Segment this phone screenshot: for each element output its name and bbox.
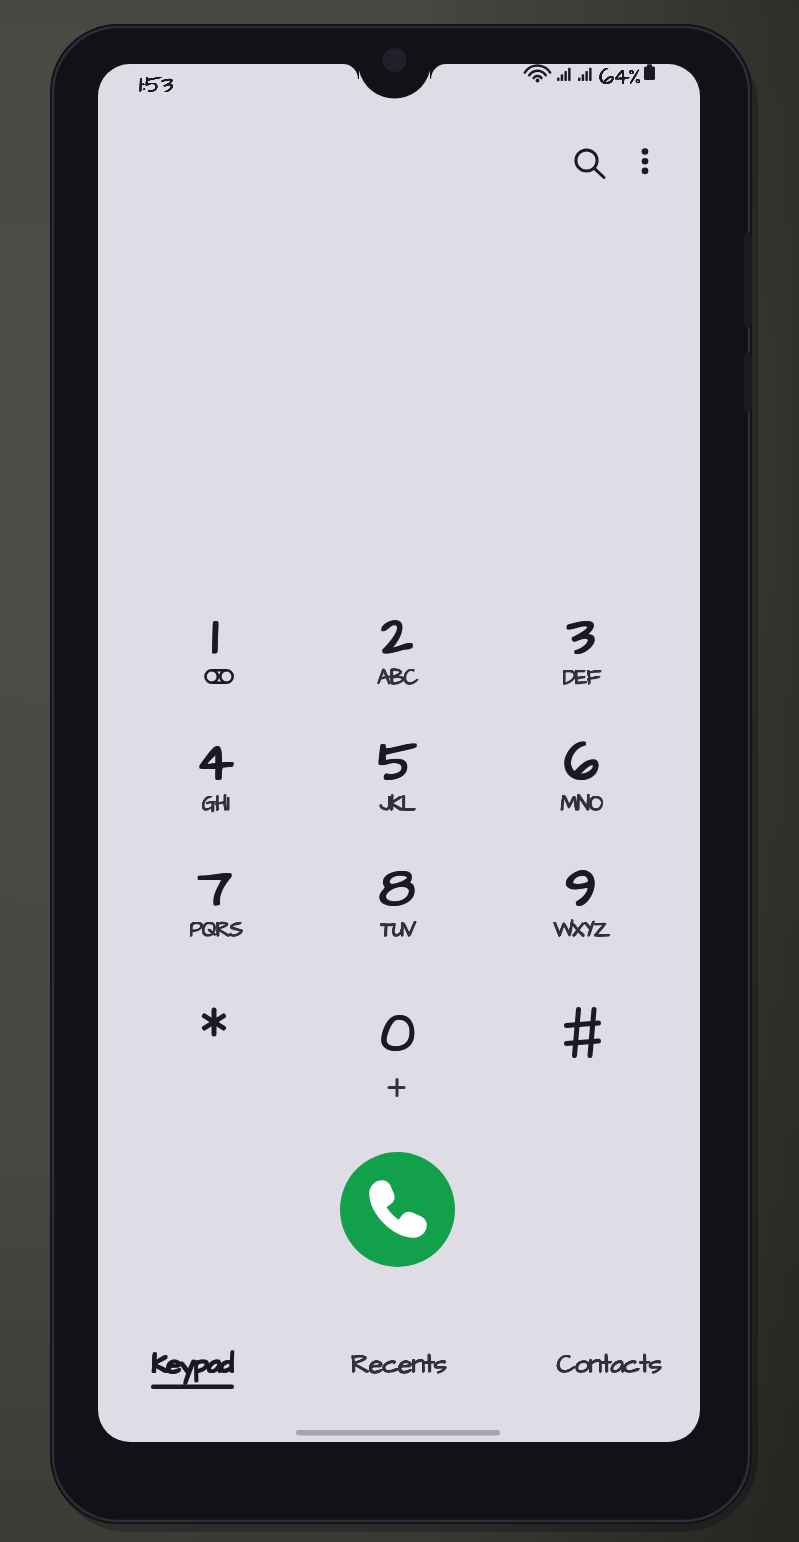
staticText: Keypad xyxy=(151,1344,233,1382)
staticText: Contacts xyxy=(556,1346,661,1384)
staticText: MNO xyxy=(560,789,602,818)
staticText: Keypad xyxy=(150,1346,232,1384)
staticText: Contacts xyxy=(556,1345,661,1383)
staticText: 4 xyxy=(195,724,233,800)
staticText: 0 xyxy=(381,995,416,1071)
staticText: Recents xyxy=(350,1345,446,1383)
staticText: MNO xyxy=(560,789,602,818)
button[interactable]: Search xyxy=(554,128,620,194)
staticText: 9 xyxy=(564,851,596,927)
staticText: 8 xyxy=(380,852,416,928)
staticText: 1:53 xyxy=(139,68,173,101)
button[interactable]: 6 xyxy=(497,712,665,832)
button[interactable]: 3 xyxy=(497,586,665,706)
staticText: PQRS xyxy=(189,915,242,944)
staticText: 1:53 xyxy=(139,68,173,101)
staticText: WXYZ xyxy=(553,916,609,945)
staticText: TUV xyxy=(380,915,415,944)
staticText: Recents xyxy=(350,1346,446,1384)
staticText: TUV xyxy=(380,915,415,944)
staticText: 6 xyxy=(563,726,598,802)
staticText: 64% xyxy=(599,60,641,93)
staticText: WXYZ xyxy=(553,915,609,944)
staticText: JKL xyxy=(379,790,415,819)
staticText: MNO xyxy=(560,789,602,818)
staticText: 2 xyxy=(382,598,414,674)
button[interactable] xyxy=(131,983,299,1103)
staticText: 3 xyxy=(568,600,596,676)
staticText: 6 xyxy=(565,726,600,802)
staticText: 7 xyxy=(197,852,231,928)
staticText: ABC xyxy=(377,663,417,692)
staticText: 7 xyxy=(198,850,232,926)
staticText: PQRS xyxy=(189,915,242,944)
staticText: Contacts xyxy=(556,1345,661,1383)
staticText: DEF xyxy=(562,663,600,692)
staticText: PQRS xyxy=(189,915,242,944)
staticText: 0 xyxy=(379,997,414,1073)
staticText: 64% xyxy=(599,60,641,93)
staticText: 64% xyxy=(599,60,641,93)
button[interactable] xyxy=(497,983,665,1103)
staticText: TUV xyxy=(380,915,415,944)
button[interactable]: 7 xyxy=(131,838,299,958)
staticText: 8 xyxy=(378,850,414,926)
button[interactable]: 8 xyxy=(313,838,481,958)
staticText: Recents xyxy=(350,1345,446,1383)
staticText: 2 xyxy=(380,598,412,674)
button[interactable]: Keypad xyxy=(97,1330,287,1402)
staticText: ABC xyxy=(377,663,417,692)
staticText: DEF xyxy=(562,663,600,692)
staticText: 6 xyxy=(564,725,599,801)
staticText: 6 xyxy=(563,725,598,801)
staticText: 7 xyxy=(198,851,232,927)
staticText: 9 xyxy=(566,852,598,928)
staticText: PQRS xyxy=(189,915,242,944)
staticText: 6 xyxy=(564,726,599,802)
staticText: 3 xyxy=(568,599,596,675)
staticText: 5 xyxy=(378,726,417,802)
staticText: GHI xyxy=(201,789,229,818)
staticText: 1 xyxy=(212,599,220,675)
staticText: PQRS xyxy=(189,916,242,945)
button[interactable]: 9 xyxy=(497,838,665,958)
button[interactable]: Call xyxy=(340,1152,455,1267)
staticText: 1:53 xyxy=(139,68,173,101)
button[interactable]: More options xyxy=(625,128,667,194)
staticText: WXYZ xyxy=(553,915,609,944)
staticText: 0 xyxy=(380,997,415,1073)
staticText: 0 xyxy=(381,997,416,1073)
staticText: JKL xyxy=(380,789,416,818)
staticText: 7 xyxy=(199,850,233,926)
staticText: 1:53 xyxy=(139,68,173,101)
staticText: MNO xyxy=(561,789,603,818)
staticText: GHI xyxy=(201,789,229,818)
staticText: 3 xyxy=(567,599,595,675)
staticText: WXYZ xyxy=(553,915,609,944)
staticText: 9 xyxy=(565,852,597,928)
button[interactable]: 0 xyxy=(313,983,481,1103)
button[interactable]: 5 xyxy=(313,712,481,832)
staticText: 9 xyxy=(564,852,596,928)
staticText: ABC xyxy=(377,663,417,692)
button[interactable]: Contacts xyxy=(513,1330,703,1402)
staticText: 3 xyxy=(567,600,595,676)
staticText: 2 xyxy=(380,599,412,675)
button[interactable]: Recents xyxy=(303,1330,493,1402)
staticText: PQRS xyxy=(189,915,242,944)
staticText: DEF xyxy=(562,663,600,692)
staticText: ABC xyxy=(378,663,418,692)
button[interactable]: 4 xyxy=(131,712,299,832)
staticText: Recents xyxy=(350,1345,446,1383)
button[interactable]: 1 xyxy=(131,586,299,706)
staticText: TUV xyxy=(380,915,415,944)
staticText: 1:53 xyxy=(139,68,173,101)
staticText: GHI xyxy=(201,789,229,818)
staticText: DEF xyxy=(562,663,600,692)
button[interactable]: 2 xyxy=(313,586,481,706)
staticText: Recents xyxy=(350,1345,446,1383)
staticText: 4 xyxy=(196,725,234,801)
staticText: DEF xyxy=(563,663,601,692)
staticText: 1 xyxy=(211,598,219,674)
staticText: 9 xyxy=(565,851,597,927)
